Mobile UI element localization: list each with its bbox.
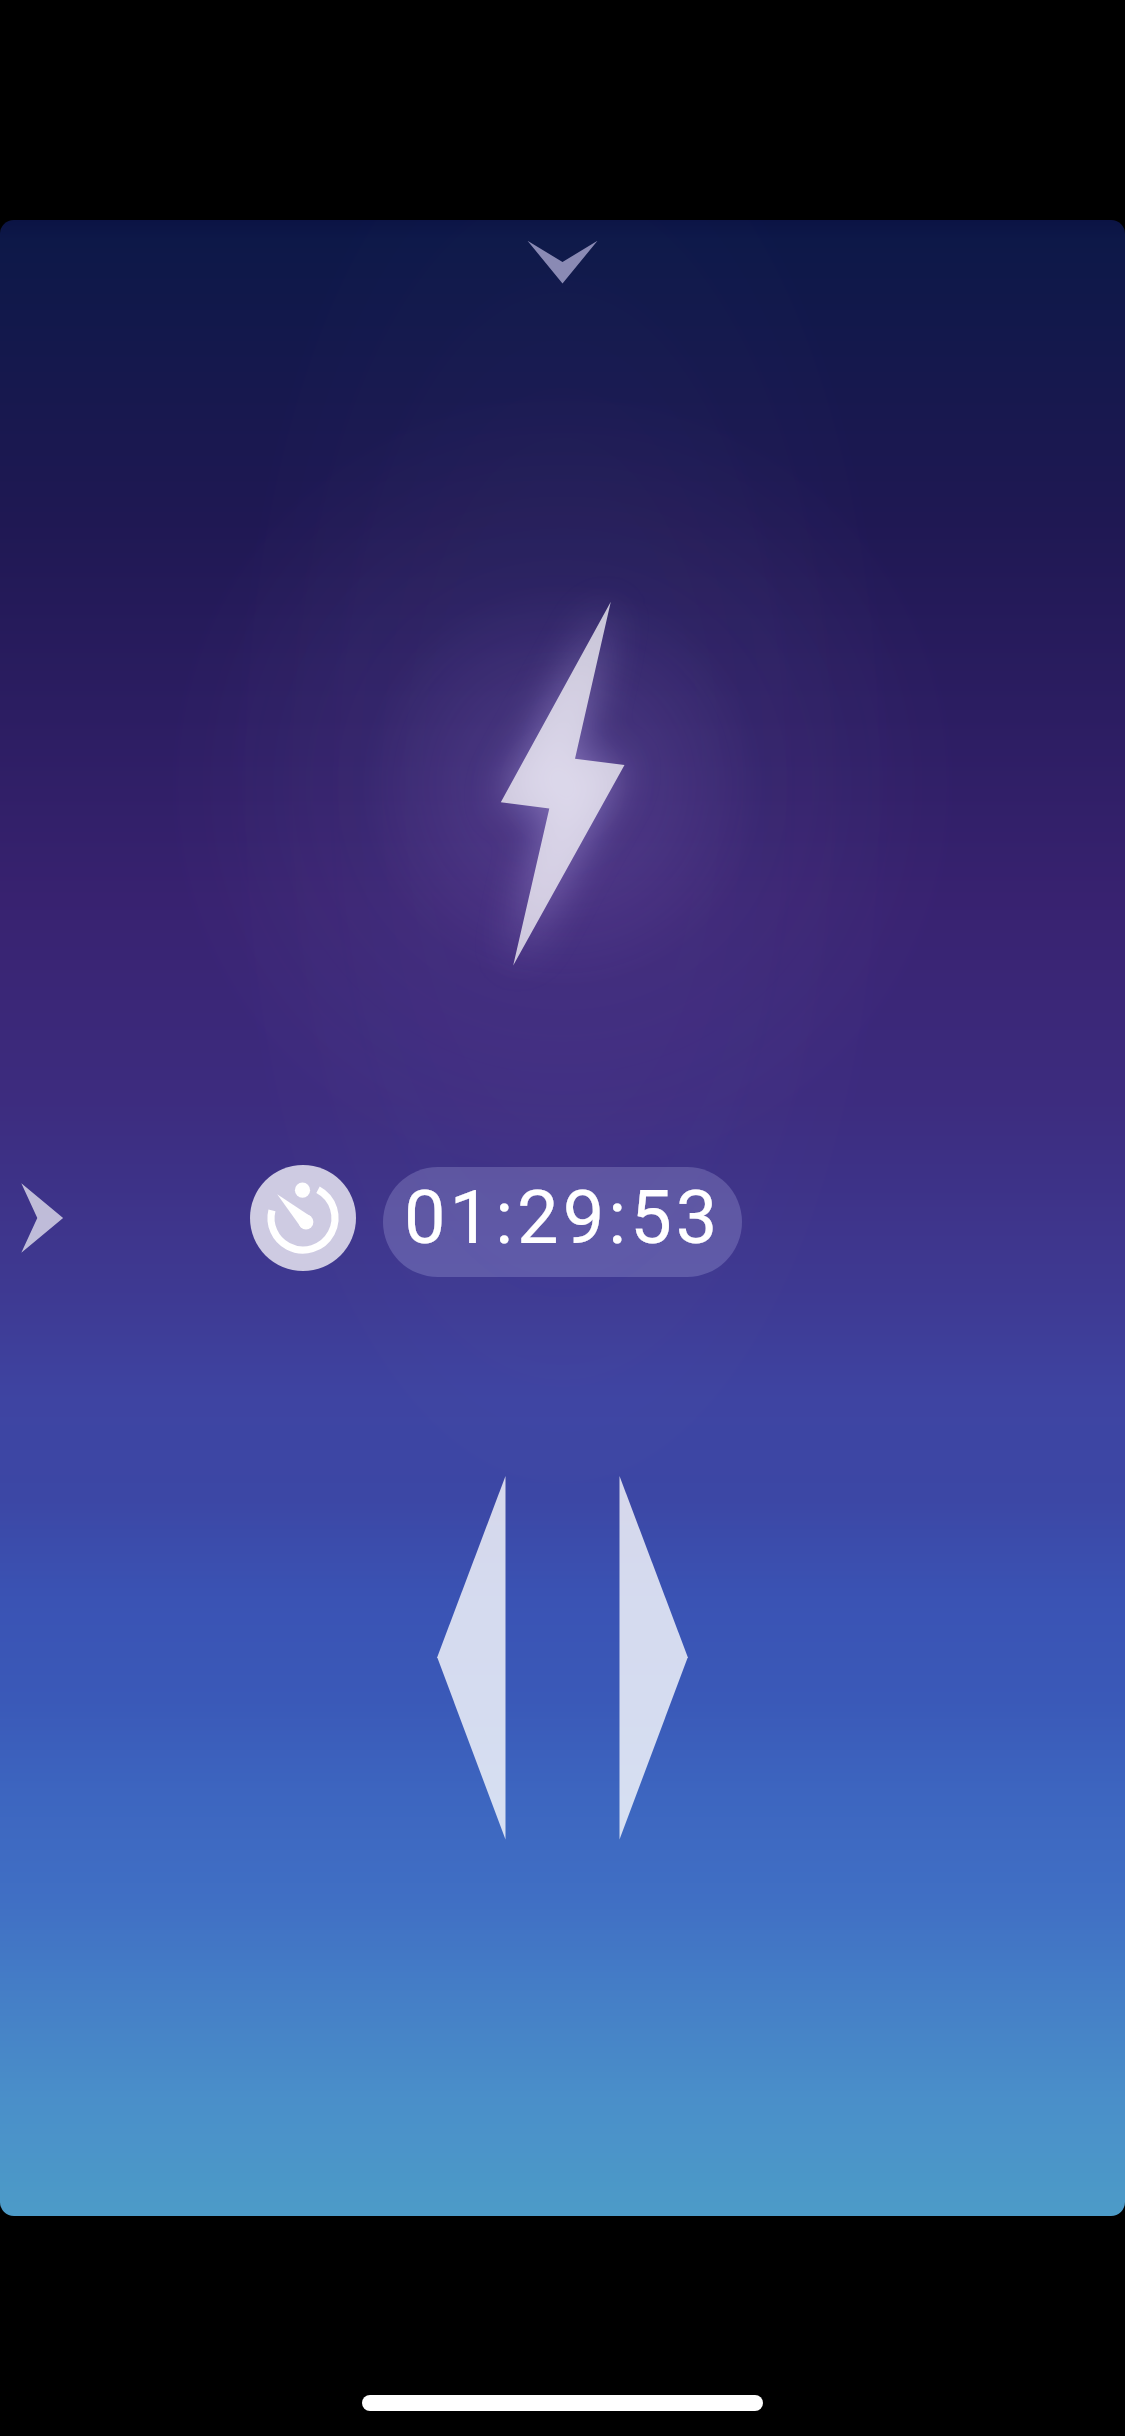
- staticText: 01:29:53: [404, 1174, 722, 1261]
- button[interactable]: 01:29:53: [383, 1167, 742, 1277]
- button[interactable]: Next: [565, 1470, 710, 1852]
- button[interactable]: Sleep timer: [250, 1165, 356, 1271]
- button[interactable]: More: [0, 1170, 95, 1270]
- button[interactable]: Flash: [480, 590, 650, 980]
- button[interactable]: Collapse: [500, 222, 625, 302]
- button[interactable]: Previous: [420, 1470, 565, 1852]
